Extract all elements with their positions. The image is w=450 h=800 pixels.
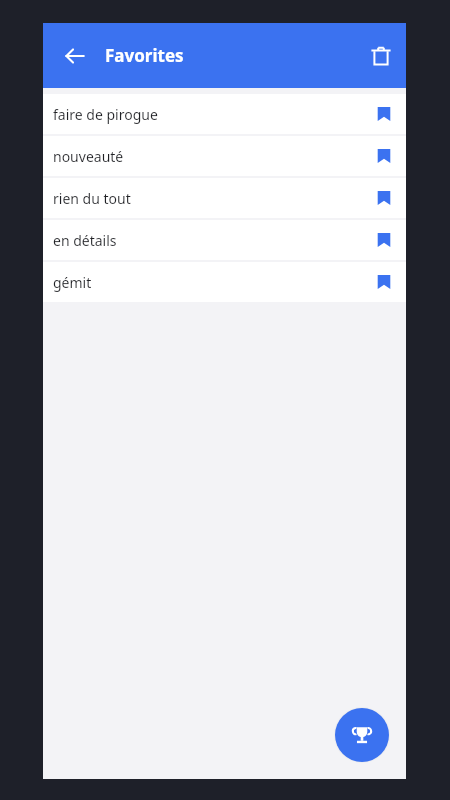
staticText: faire de pirogue bbox=[53, 105, 366, 124]
button[interactable]: rien du tout bbox=[43, 178, 406, 218]
staticText: Favorites bbox=[105, 44, 184, 67]
button[interactable]: faire de pirogue bbox=[43, 94, 406, 134]
button[interactable]: Achievements bbox=[335, 708, 389, 762]
button[interactable]: nouveauté bbox=[43, 136, 406, 176]
staticText: nouveauté bbox=[53, 147, 366, 166]
button[interactable]: en détails bbox=[43, 220, 406, 260]
button[interactable]: Remove en détails from favorites bbox=[366, 222, 402, 258]
button[interactable]: gémit bbox=[43, 262, 406, 302]
staticText: rien du tout bbox=[53, 189, 366, 208]
button[interactable]: Back bbox=[55, 36, 95, 76]
button[interactable]: Remove rien du tout from favorites bbox=[366, 180, 402, 216]
staticText: gémit bbox=[53, 273, 366, 292]
staticText: en détails bbox=[53, 231, 366, 250]
button[interactable]: Delete all favorites bbox=[359, 34, 403, 78]
button[interactable]: Remove faire de pirogue from favorites bbox=[366, 96, 402, 132]
button[interactable]: Remove nouveauté from favorites bbox=[366, 138, 402, 174]
button[interactable]: Remove gémit from favorites bbox=[366, 264, 402, 300]
